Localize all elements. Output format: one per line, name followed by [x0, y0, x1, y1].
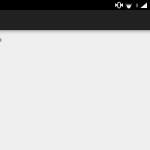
other: System status bar: [0, 0, 150, 10]
